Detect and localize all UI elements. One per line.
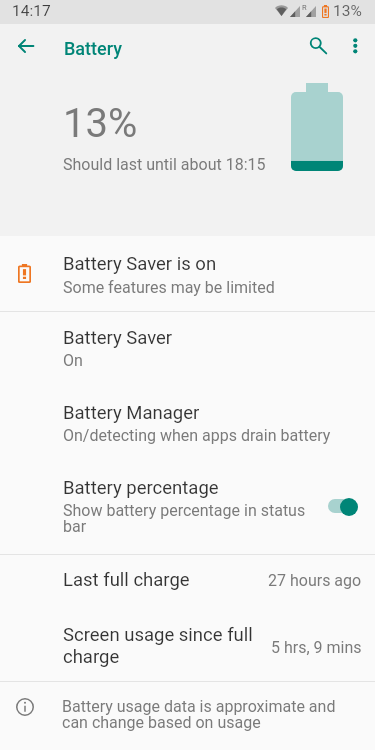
staticText: Last full charge xyxy=(63,569,190,591)
button[interactable]: Search xyxy=(296,28,336,68)
staticText: 13% xyxy=(333,2,362,20)
staticText: Battery percentage xyxy=(63,477,219,499)
button[interactable]: Last full charge xyxy=(0,554,375,614)
staticText: On/detecting when apps drain battery xyxy=(63,426,331,445)
button[interactable]: Battery Saver xyxy=(0,327,375,399)
staticText: Some features may be limited xyxy=(63,278,275,297)
staticText: Battery Saver is on xyxy=(63,253,217,275)
staticText: Battery xyxy=(64,38,123,59)
button[interactable]: Battery percentage xyxy=(0,474,375,554)
staticText: Battery Saver xyxy=(63,327,173,349)
staticText: Should last until about 18:15 xyxy=(63,155,266,174)
button[interactable]: Navigate up xyxy=(5,28,45,68)
staticText: Battery Manager xyxy=(63,402,200,424)
staticText: 14:17 xyxy=(12,2,51,20)
button[interactable]: Battery Saver is on xyxy=(0,236,375,311)
button[interactable]: Battery Manager xyxy=(0,402,375,474)
staticText: On xyxy=(63,351,83,370)
staticText: 5 hrs, 9 mins xyxy=(271,638,362,657)
button[interactable]: Screen usage since full charge xyxy=(0,614,375,681)
staticText: 13% xyxy=(63,100,138,147)
staticText: 27 hours ago xyxy=(268,571,362,590)
button[interactable]: More options xyxy=(335,28,375,68)
staticText: Show battery percentage in status bar xyxy=(63,501,309,536)
staticText: Battery usage data is approximate and ca… xyxy=(62,697,337,732)
staticText: R xyxy=(302,3,307,12)
staticText: Screen usage since full charge xyxy=(63,624,258,668)
